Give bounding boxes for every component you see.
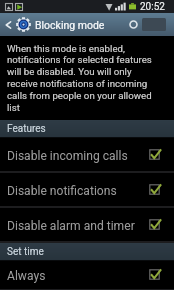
staticText: Disable notifications [7,184,117,198]
button[interactable]: Disable notifications [0,173,174,206]
button[interactable]: Always [0,261,174,289]
button[interactable]: Navigate up [0,13,16,36]
staticText: Blocking mode [35,19,105,31]
staticText: 20:52 [140,1,165,13]
button[interactable]: Blocking mode on or off [127,13,174,36]
staticText: Set time [7,246,44,258]
button[interactable]: Disable alarm and timer [0,208,174,241]
staticText: Features [7,123,46,135]
button[interactable]: Disable incoming calls [0,138,174,171]
staticText: Disable incoming calls [7,149,128,163]
staticText: Always [7,269,46,283]
staticText: Disable alarm and timer [7,219,135,233]
staticText: When this mode is enabled, notifications… [7,43,157,114]
